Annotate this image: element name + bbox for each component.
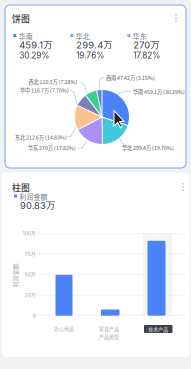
- staticText: 华北 299.4万 (19.76%): [122, 144, 174, 151]
- staticText: 柱图: [12, 181, 30, 194]
- staticText: 25万: [24, 292, 35, 298]
- staticText: 华东 270万 (17.82%): [28, 144, 76, 151]
- button[interactable]: More options: [177, 179, 189, 195]
- staticText: 东北 212.6万 (14.83%): [15, 133, 67, 141]
- staticText: 75万: [24, 250, 35, 257]
- staticText: 家具产品: [99, 325, 119, 332]
- staticText: 华中 116.7万 (7.70%): [20, 86, 69, 94]
- staticText: 办公用品: [54, 325, 74, 332]
- staticText: 299.4万: [76, 39, 112, 51]
- staticText: 0: [32, 312, 35, 319]
- staticText: 利润金额: [3, 271, 27, 280]
- button[interactable]: Bar: [147, 241, 165, 316]
- button[interactable]: 柱图: [12, 181, 30, 194]
- staticText: 100万: [22, 230, 35, 237]
- staticText: 产品类型: [99, 333, 119, 340]
- staticText: 饼图: [12, 12, 30, 25]
- button[interactable]: Bar: [55, 275, 72, 316]
- staticText: 利润金额: [19, 191, 47, 201]
- staticText: 30.29%: [19, 50, 49, 60]
- staticText: 50万: [24, 271, 35, 278]
- staticText: 技术产品: [148, 325, 168, 332]
- staticText: 西南 47.42万 (3.15%): [106, 74, 155, 81]
- staticText: 459.1万: [19, 39, 52, 51]
- staticText: 华南: [19, 31, 33, 41]
- staticText: 17.82%: [133, 50, 160, 60]
- button[interactable]: Bar: [101, 309, 119, 316]
- staticText: 90.83万: [20, 199, 55, 211]
- staticText: 华东: [133, 31, 147, 41]
- staticText: 19.76%: [76, 50, 104, 60]
- button[interactable]: 饼图: [12, 12, 30, 25]
- staticText: 华南 459.1万 (30.29%): [133, 88, 185, 95]
- staticText: 270万: [133, 39, 159, 51]
- staticText: 西北 110.3万 (7.28%): [28, 78, 77, 85]
- staticText: 华北: [76, 31, 90, 41]
- button[interactable]: More options: [170, 10, 182, 26]
